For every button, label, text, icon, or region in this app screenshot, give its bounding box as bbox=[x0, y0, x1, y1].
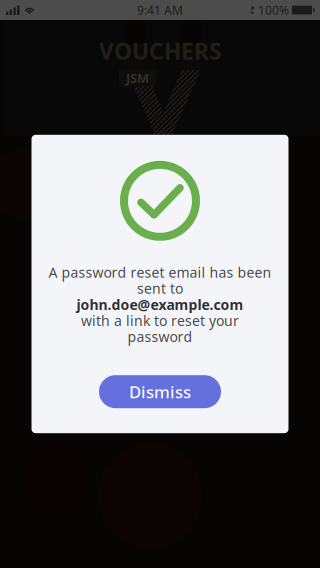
button[interactable]: Dismiss bbox=[99, 375, 221, 408]
staticText: A password reset email has been bbox=[48, 263, 271, 282]
staticText: 9:41 AM bbox=[137, 2, 183, 18]
staticText: VOUCHERS bbox=[99, 36, 221, 66]
staticText: password bbox=[127, 327, 192, 346]
staticText: JSM bbox=[126, 69, 149, 87]
staticText: 100% bbox=[258, 2, 289, 18]
staticText: john.doe@example.com bbox=[76, 295, 243, 314]
staticText: with a link to reset your bbox=[81, 311, 239, 330]
staticText: Dismiss bbox=[129, 380, 191, 403]
staticText: sent to bbox=[137, 279, 183, 298]
